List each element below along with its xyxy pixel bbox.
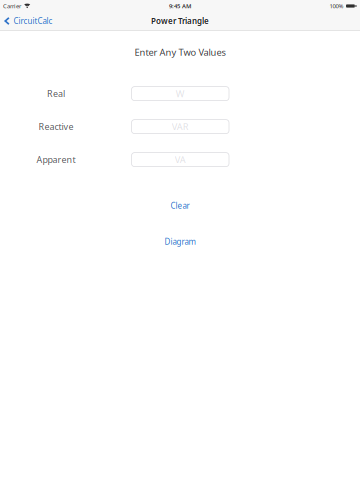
button[interactable]: Diagram [144, 235, 216, 248]
button[interactable]: Clear [144, 199, 216, 212]
staticText: Carrier [3, 2, 21, 10]
staticText: Apparent [36, 153, 75, 166]
staticText: Enter Any Two Values [134, 46, 225, 58]
button[interactable]: VA [131, 153, 229, 167]
staticText: VAR [172, 120, 189, 133]
staticText: CircuitCalc [13, 16, 52, 26]
staticText: W [176, 87, 185, 100]
staticText: Reactive [38, 120, 73, 133]
staticText: Real [47, 87, 65, 100]
staticText: 9:45 AM [169, 2, 191, 10]
button[interactable]: W [131, 87, 229, 101]
staticText: Clear [170, 200, 189, 211]
staticText: Diagram [164, 236, 195, 247]
button[interactable]: CircuitCalc [0, 12, 58, 30]
staticText: 100% [330, 2, 344, 10]
button[interactable]: VAR [131, 120, 229, 134]
staticText: Power Triangle [151, 16, 209, 26]
staticText: VA [175, 153, 186, 166]
